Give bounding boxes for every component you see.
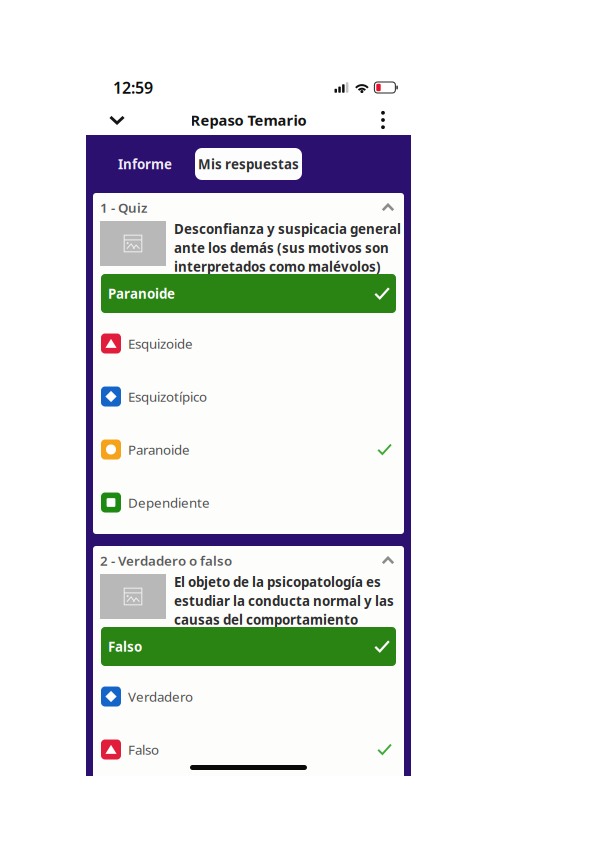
button[interactable]: Collapse	[377, 199, 399, 215]
button[interactable]: More options	[366, 105, 400, 135]
button[interactable]: Collapse	[377, 552, 399, 568]
staticText: Dependiente	[128, 494, 210, 511]
staticText: Desconfianza y suspicacia general ante l…	[174, 220, 401, 275]
button[interactable]: Dependiente	[93, 476, 404, 529]
staticText: Informe	[118, 155, 172, 173]
button[interactable]: Falso	[93, 723, 404, 776]
button[interactable]: Mis respuestas	[195, 148, 302, 180]
staticText: El objeto de la psicopatología es estudi…	[174, 573, 394, 628]
button[interactable]: Esquizoide	[93, 317, 404, 370]
staticText: Esquizotípico	[128, 388, 207, 405]
button[interactable]: Paranoide	[93, 423, 404, 476]
button[interactable]: Close	[97, 105, 137, 135]
staticText: 1 - Quiz	[100, 199, 147, 216]
staticText: 12:59	[113, 77, 153, 98]
staticText: Verdadero	[128, 688, 193, 705]
staticText: Esquizoide	[128, 335, 193, 352]
staticText: 2 - Verdadero o falso	[100, 552, 232, 569]
button[interactable]: Verdadero	[93, 670, 404, 723]
staticText: Repaso Temario	[190, 110, 306, 130]
staticText: Mis respuestas	[198, 155, 299, 173]
staticText: Paranoide	[108, 285, 175, 302]
staticText: Falso	[108, 638, 142, 655]
button[interactable]: Esquizotípico	[93, 370, 404, 423]
staticText: Falso	[128, 741, 159, 758]
button[interactable]: Informe	[107, 148, 183, 180]
staticText: Paranoide	[128, 441, 190, 458]
